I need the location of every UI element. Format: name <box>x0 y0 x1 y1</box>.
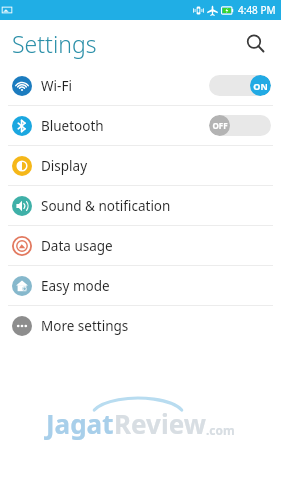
button[interactable]: Wi-Fi <box>0 66 281 105</box>
staticText: More settings <box>41 317 129 335</box>
staticText: Easy mode <box>41 277 110 295</box>
staticText: Review <box>114 406 206 441</box>
staticText: Bluetooth <box>41 117 104 135</box>
staticText: OFF <box>212 120 228 131</box>
staticText: Data usage <box>41 237 113 255</box>
button[interactable]: Bluetooth off <box>209 115 271 136</box>
staticText: 4:48 PM <box>238 3 276 17</box>
button[interactable]: Bluetooth <box>0 106 281 145</box>
staticText: Wi-Fi <box>41 77 72 95</box>
button[interactable]: Easy mode <box>0 266 281 305</box>
button[interactable]: Data usage <box>0 226 281 265</box>
staticText: Settings <box>12 28 97 59</box>
button[interactable]: Sound & notification <box>0 186 281 225</box>
staticText: .com <box>206 422 235 438</box>
button[interactable]: More settings <box>0 306 281 345</box>
staticText: Sound & notification <box>41 197 171 215</box>
button[interactable]: Display <box>0 146 281 185</box>
staticText: Display <box>41 157 88 175</box>
button[interactable]: Wi-Fi on <box>209 75 271 96</box>
staticText: ON <box>253 80 268 92</box>
staticText: Jagat <box>46 406 114 441</box>
button[interactable]: Search <box>237 25 273 61</box>
